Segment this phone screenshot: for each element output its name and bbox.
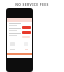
button[interactable]: Book [22,26,31,29]
button[interactable]: Book [22,31,31,34]
staticText: NO SERVICE FEES [15,2,49,6]
